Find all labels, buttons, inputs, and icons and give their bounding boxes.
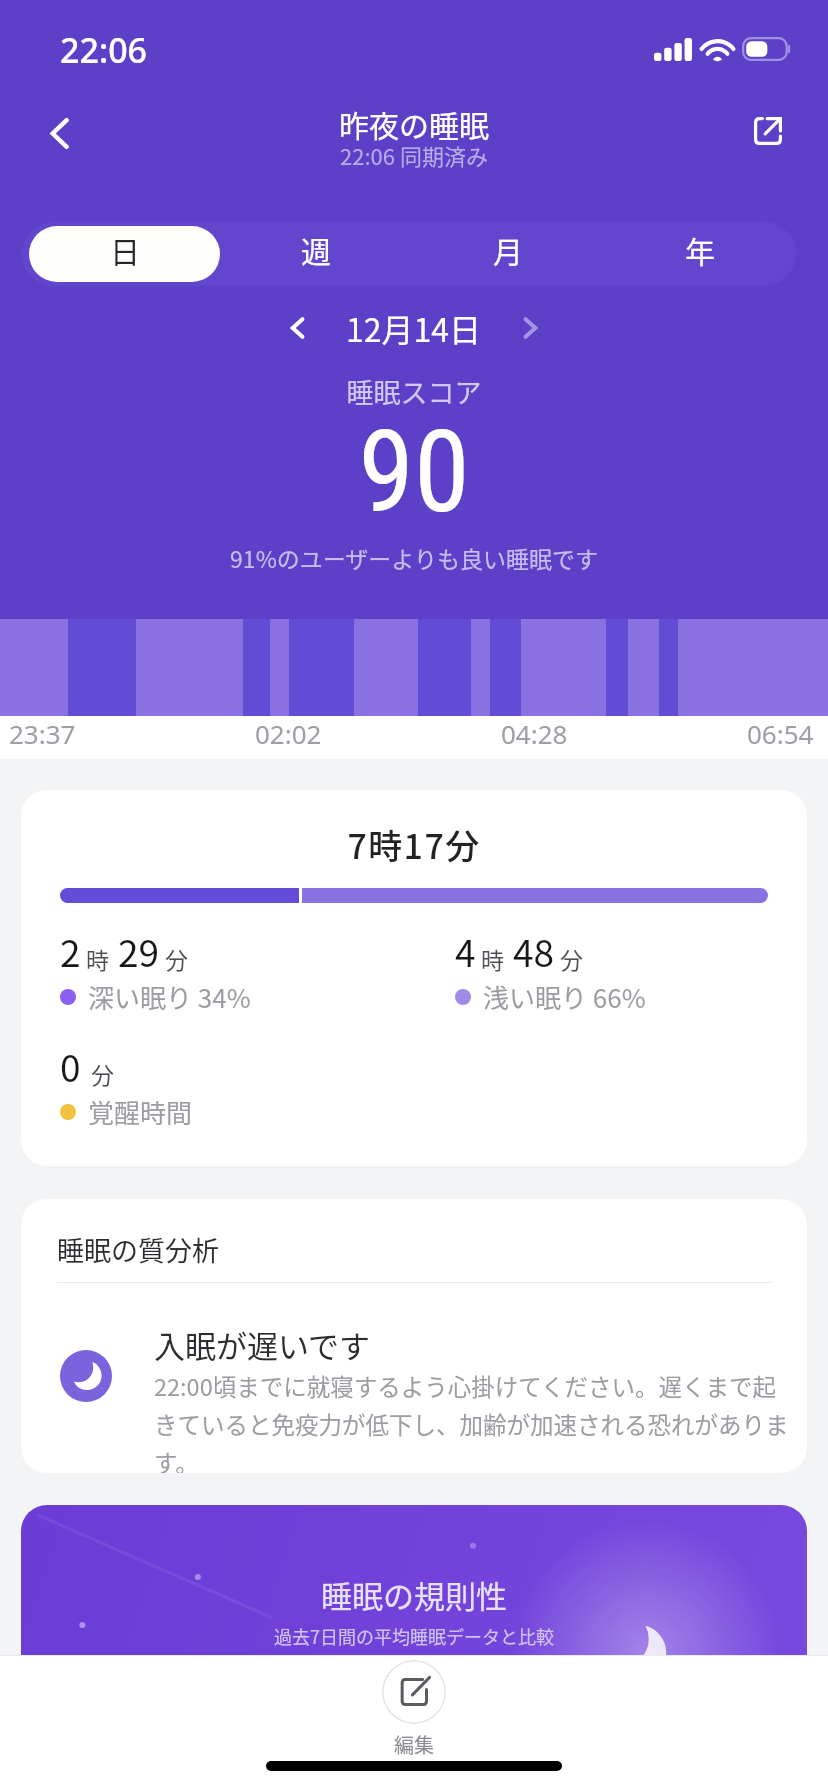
button[interactable]: 日 (29, 226, 220, 282)
staticText: 睡眠の質分析 (57, 1230, 219, 1269)
staticText: 覚醒時間 (88, 1093, 193, 1131)
staticText: 2 (60, 924, 81, 978)
staticText: 睡眠スコア (0, 372, 828, 411)
staticText: 深い眠り 34% (88, 978, 251, 1016)
staticText: 48 (513, 924, 555, 978)
staticText: 22:06 同期済み (0, 139, 828, 171)
staticText: 29 (118, 924, 160, 978)
staticText: 時 (481, 942, 504, 975)
button[interactable]: 月 (412, 222, 604, 286)
staticText: 23:37 (9, 716, 76, 751)
staticText: 時 (86, 942, 109, 975)
button[interactable]: Share (732, 95, 804, 167)
staticText: 分 (165, 942, 188, 975)
staticText: 91%のユーザーよりも良い睡眠です (0, 541, 828, 574)
staticText: 入眠が遅いです (154, 1322, 371, 1367)
staticText: 22:00頃までに就寝するよう心掛けてください。遅くまで起きていると免疫力が低下… (154, 1369, 799, 1473)
button[interactable]: 週 (220, 222, 412, 286)
staticText: 90 (0, 406, 828, 538)
staticText: 睡眠の規則性 (21, 1572, 807, 1617)
button[interactable]: Previous day (270, 300, 326, 356)
staticText: 分 (91, 1057, 114, 1090)
staticText: 22:06 (60, 27, 148, 73)
staticText: 04:28 (501, 716, 568, 751)
staticText: 12月14日 (346, 305, 482, 351)
staticText: 週 (301, 228, 331, 271)
staticText: 浅い眠り 66% (483, 978, 646, 1016)
staticText: 昨夜の睡眠 (0, 102, 828, 145)
staticText: 4 (455, 924, 476, 978)
staticText: 日 (110, 228, 140, 271)
button[interactable]: 年 (604, 222, 796, 286)
staticText: 0 (60, 1039, 81, 1093)
staticText: 過去7日間の平均睡眠データと比較 (21, 1623, 807, 1649)
staticText: 02:02 (255, 716, 322, 751)
staticText: 月 (493, 228, 523, 271)
staticText: 分 (560, 942, 583, 975)
staticText: 7時17分 (21, 820, 807, 869)
staticText: 編集 (394, 1730, 434, 1759)
staticText: 年 (685, 228, 715, 271)
button[interactable]: Back (23, 97, 95, 169)
button[interactable]: 編集 (382, 1660, 446, 1759)
button[interactable]: Next day (502, 300, 558, 356)
staticText: 06:54 (747, 716, 814, 751)
